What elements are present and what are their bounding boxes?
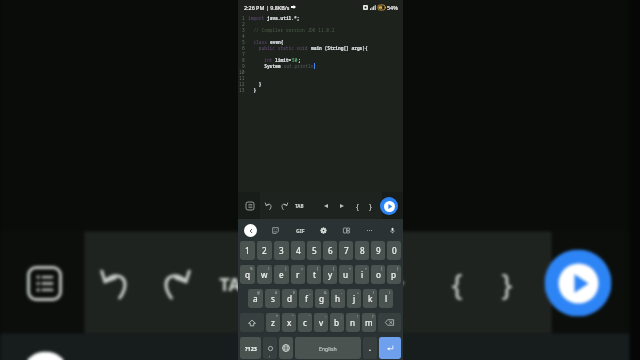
button[interactable]: File list — [243, 198, 256, 214]
button[interactable]: Back — [244, 224, 257, 237]
staticText: v — [319, 317, 324, 328]
button[interactable]: s — [265, 289, 280, 308]
button[interactable]: Settings — [318, 225, 329, 236]
staticText: } — [248, 81, 262, 87]
button[interactable]: t — [307, 265, 321, 284]
staticText: & — [324, 290, 327, 295]
button[interactable]: } — [365, 198, 375, 214]
button[interactable]: q — [240, 265, 255, 284]
button[interactable]: a — [248, 289, 263, 308]
button[interactable]: Switch language — [279, 337, 293, 359]
button[interactable]: b — [330, 313, 344, 332]
button[interactable]: 3 — [274, 241, 289, 260]
button[interactable]: File list — [19, 252, 69, 313]
button[interactable]: y — [323, 265, 337, 284]
button[interactable]: Run — [544, 249, 611, 316]
staticText: ' — [309, 314, 310, 319]
button[interactable]: Run — [380, 197, 398, 215]
button[interactable]: 6 — [323, 241, 337, 260]
button[interactable]: Undo — [91, 252, 141, 313]
button[interactable]: m — [362, 313, 376, 332]
staticText: } — [248, 87, 257, 93]
button[interactable]: g — [315, 289, 329, 308]
staticText: 0 — [392, 245, 397, 256]
staticText: f — [305, 293, 308, 304]
staticText: # — [275, 290, 278, 295]
button[interactable]: 9 — [371, 241, 385, 260]
button[interactable]: Move right — [378, 252, 416, 313]
button[interactable]: Clipboard — [388, 354, 430, 360]
button[interactable]: Settings — [298, 354, 340, 360]
button[interactable]: 1 — [240, 241, 255, 260]
button[interactable]: 0 — [387, 241, 401, 260]
button[interactable]: 4 — [291, 241, 305, 260]
button[interactable]: e — [274, 265, 289, 284]
button[interactable]: i — [355, 265, 369, 284]
button[interactable]: Move left — [317, 252, 355, 313]
button[interactable]: English — [295, 337, 361, 359]
button[interactable]: l — [379, 289, 393, 308]
button[interactable]: r — [291, 265, 305, 284]
staticText: ; — [341, 314, 342, 319]
button[interactable]: Move right — [337, 198, 347, 214]
button[interactable]: h — [331, 289, 345, 308]
button[interactable]: z — [266, 313, 280, 332]
button[interactable]: 2 — [257, 241, 272, 260]
button[interactable]: Backspace — [378, 313, 401, 332]
button[interactable]: p — [387, 265, 401, 284]
staticText: 13 — [239, 87, 245, 93]
staticText: \ — [268, 266, 270, 271]
staticText: TAB — [295, 203, 304, 209]
button[interactable]: Shift — [240, 313, 264, 332]
button[interactable]: d — [282, 289, 297, 308]
button[interactable]: n — [346, 313, 360, 332]
button[interactable]: ?123 — [240, 337, 261, 359]
staticText: y — [328, 269, 333, 280]
button[interactable]: o — [371, 265, 385, 284]
button[interactable]: Clipboard — [341, 225, 352, 236]
button[interactable]: Enter — [379, 337, 401, 359]
staticText: { — [451, 263, 462, 302]
button[interactable]: . — [363, 337, 377, 359]
button[interactable]: { — [437, 252, 475, 313]
button[interactable]: Move left — [321, 198, 331, 214]
button[interactable]: c — [298, 313, 312, 332]
button[interactable]: x — [282, 313, 296, 332]
button[interactable]: GIF — [294, 225, 306, 236]
button[interactable]: TAB — [208, 252, 262, 313]
button[interactable]: Stickers — [270, 225, 281, 236]
button[interactable]: Redo — [277, 198, 290, 214]
button[interactable]: TAB — [292, 198, 306, 214]
button[interactable]: 5 — [307, 241, 321, 260]
staticText: import — [248, 15, 267, 21]
button[interactable]: } — [487, 252, 525, 313]
button[interactable]: Undo — [262, 198, 275, 214]
button[interactable]: Voice input — [387, 225, 398, 236]
button[interactable]: u — [339, 265, 353, 284]
button[interactable]: GIF — [205, 354, 251, 360]
staticText: e — [279, 269, 284, 280]
button[interactable]: { — [352, 198, 362, 214]
button[interactable]: 8 — [355, 241, 369, 260]
staticText: r — [296, 269, 300, 280]
staticText: 12 — [239, 81, 245, 87]
staticText: [ — [317, 266, 319, 271]
button[interactable]: More options — [364, 225, 375, 236]
button[interactable]: j — [347, 289, 361, 308]
staticText: 2:26 PM | 9.8KB/s — [244, 4, 290, 11]
button[interactable]: k — [363, 289, 377, 308]
button[interactable]: 7 — [339, 241, 353, 260]
staticText: w — [261, 269, 268, 280]
button[interactable]: Redo — [149, 252, 199, 313]
button[interactable]: Back — [21, 351, 69, 360]
staticText: c — [303, 317, 307, 328]
button[interactable]: f — [299, 289, 313, 308]
staticText: } — [501, 263, 512, 302]
button[interactable]: Emoji and comma — [263, 337, 277, 359]
button[interactable]: v — [314, 313, 328, 332]
button[interactable]: w — [257, 265, 272, 284]
staticText: 9 — [376, 245, 381, 256]
